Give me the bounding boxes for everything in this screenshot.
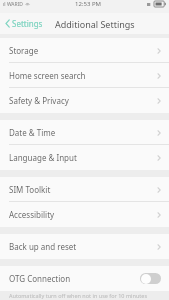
staticText: SIM Toolkit <box>9 184 51 195</box>
button[interactable]: Settings <box>5 18 43 29</box>
staticText: Safety & Privacy <box>9 95 69 106</box>
button[interactable]: Storage <box>0 38 169 63</box>
staticText: Storage <box>9 45 39 56</box>
staticText: Date & Time <box>9 127 56 138</box>
staticText: Automatically turn off when not in use f… <box>9 292 148 299</box>
staticText: 12:53 PM <box>75 0 101 8</box>
staticText: Settings <box>12 18 43 29</box>
button[interactable]: Language & Input <box>0 145 169 170</box>
button[interactable]: Safety & Privacy <box>0 88 169 113</box>
staticText: Language & Input <box>9 152 77 163</box>
button[interactable]: Date & Time <box>0 120 169 145</box>
button[interactable]: Home screen search <box>0 63 169 88</box>
button[interactable]: Accessibility <box>0 202 169 227</box>
staticText: Additional Settings <box>55 18 135 30</box>
button[interactable]: OTG Connection toggle <box>140 273 161 284</box>
staticText: Accessibility <box>9 209 55 220</box>
staticText: OTG Connection <box>9 273 71 284</box>
button[interactable]: Back up and reset <box>0 234 169 259</box>
staticText: Home screen search <box>9 70 86 81</box>
button[interactable]: SIM Toolkit <box>0 177 169 202</box>
staticText: ıl WARID <box>3 1 23 8</box>
staticText: Back up and reset <box>9 241 77 252</box>
button[interactable]: OTG Connection <box>0 266 169 291</box>
